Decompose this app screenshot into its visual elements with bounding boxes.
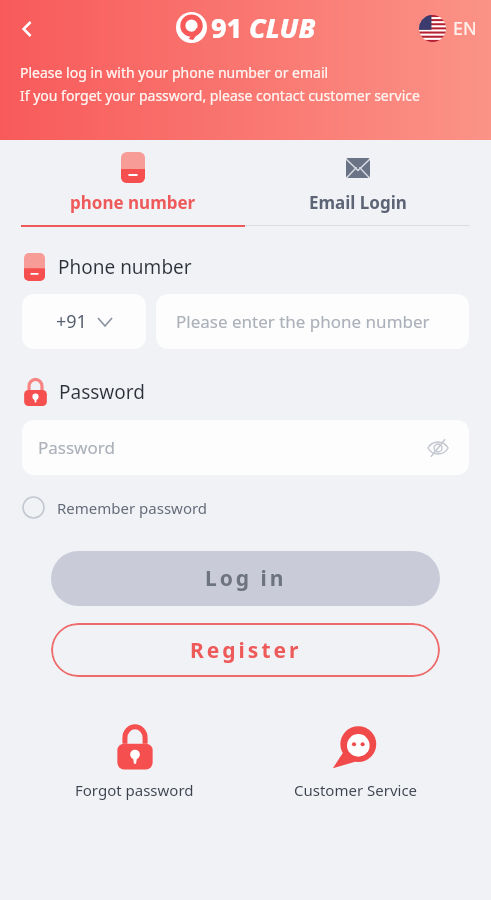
staticText: Phone number <box>58 254 192 280</box>
staticText: Please log in with your phone number or … <box>20 63 329 82</box>
button[interactable]: Register <box>51 623 440 677</box>
staticText: Register <box>190 636 302 665</box>
button[interactable]: +91 <box>22 294 146 349</box>
staticText: CLUB <box>249 9 316 46</box>
staticText: phone number <box>70 191 196 214</box>
staticText: Customer Service <box>294 780 418 800</box>
button[interactable]: Password <box>22 420 469 475</box>
button[interactable]: Log in <box>51 551 440 606</box>
staticText: Please enter the phone number <box>176 310 430 333</box>
button[interactable]: Please enter the phone number <box>156 294 469 349</box>
button[interactable]: Back <box>6 8 48 50</box>
button[interactable]: Show password <box>421 431 455 465</box>
button[interactable]: Language English <box>415 11 481 46</box>
staticText: EN <box>453 16 477 41</box>
button[interactable]: phone number <box>21 146 245 220</box>
button[interactable]: Email Login <box>245 146 470 220</box>
staticText: Forgot password <box>75 780 194 800</box>
staticText: Log in <box>205 564 287 593</box>
button[interactable]: Remember password <box>22 496 208 519</box>
staticText: Remember password <box>57 498 208 518</box>
button[interactable]: Forgot password <box>69 717 200 806</box>
staticText: Email Login <box>309 191 407 214</box>
staticText: Password <box>38 436 115 459</box>
staticText: +91 <box>56 309 87 334</box>
button[interactable]: Customer Service <box>288 717 424 806</box>
staticText: 91 <box>211 9 243 46</box>
staticText: If you forget your password, please cont… <box>20 86 420 105</box>
staticText: Password <box>59 379 145 405</box>
